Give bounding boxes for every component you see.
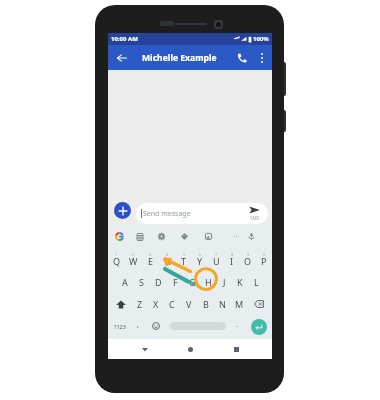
button[interactable]: Back — [112, 48, 132, 68]
staticText: J — [223, 276, 226, 288]
staticText: Send message — [143, 209, 249, 219]
button[interactable]: Send SMS — [249, 206, 260, 221]
button[interactable]: 9 — [240, 249, 256, 271]
button[interactable]: H — [200, 271, 216, 293]
button[interactable]: J — [216, 271, 232, 293]
button[interactable]: G — [184, 271, 200, 293]
staticText: 9 — [247, 252, 250, 257]
button[interactable]: C — [164, 293, 180, 315]
staticText: . — [236, 320, 238, 330]
button[interactable]: , — [132, 319, 144, 333]
button[interactable]: Send message — [136, 203, 268, 224]
staticText: Q — [113, 255, 121, 267]
button[interactable]: Back — [136, 340, 154, 358]
button[interactable]: More tools — [230, 230, 243, 243]
button[interactable]: V — [180, 293, 197, 315]
staticText: H — [205, 276, 212, 288]
button[interactable]: Settings — [155, 230, 168, 243]
staticText: P — [261, 255, 267, 267]
button[interactable]: K — [232, 271, 248, 293]
button[interactable]: 3 — [142, 249, 159, 271]
button[interactable]: 1 — [108, 249, 125, 271]
staticText: 1 — [115, 252, 118, 257]
staticText: T — [181, 255, 187, 267]
staticText: R — [165, 255, 171, 267]
staticText: E — [148, 255, 154, 267]
button[interactable]: Photos — [202, 230, 215, 243]
button[interactable]: F — [167, 271, 184, 293]
button[interactable]: 4 — [159, 249, 176, 271]
staticText: K — [237, 276, 243, 288]
staticText: C — [169, 298, 175, 310]
staticText: V — [186, 298, 192, 310]
staticText: O — [244, 255, 252, 267]
staticText: M — [235, 298, 244, 310]
staticText: U — [213, 255, 220, 267]
staticText: Y — [197, 255, 203, 267]
button[interactable]: B — [197, 293, 214, 315]
button[interactable]: ?123 — [111, 319, 129, 333]
button[interactable]: Google search — [113, 230, 126, 243]
staticText: 2 — [132, 252, 135, 257]
button[interactable]: 7 — [208, 249, 224, 271]
staticText: 4 — [166, 252, 169, 257]
button[interactable]: Home — [181, 340, 199, 358]
button[interactable]: X — [148, 293, 164, 315]
button[interactable]: GIF keyboard — [133, 230, 146, 243]
staticText: 8 — [231, 252, 234, 257]
button[interactable]: 2 — [125, 249, 142, 271]
button[interactable]: Voice input — [245, 230, 258, 243]
button[interactable]: D — [150, 271, 167, 293]
staticText: Michelle Example — [142, 52, 217, 64]
button[interactable]: Z — [132, 293, 148, 315]
staticText: , — [137, 320, 139, 330]
staticText: 10:00 AM — [111, 35, 138, 43]
button[interactable]: 5 — [176, 249, 192, 271]
button[interactable]: M — [231, 293, 248, 315]
staticText: B — [203, 298, 209, 310]
button[interactable]: 0 — [256, 249, 272, 271]
staticText: 100% — [253, 35, 269, 43]
staticText: 0 — [263, 252, 266, 257]
button[interactable]: A — [116, 271, 133, 293]
button[interactable]: Enter — [251, 319, 267, 335]
staticText: F — [173, 276, 178, 288]
button[interactable]: More options — [253, 49, 270, 66]
staticText: W — [129, 255, 138, 267]
staticText: I — [230, 255, 234, 267]
staticText: N — [219, 298, 226, 310]
staticText: 7 — [215, 252, 218, 257]
button[interactable]: Call — [232, 48, 252, 68]
button[interactable]: Stickers — [178, 230, 191, 243]
staticText: 3 — [149, 252, 152, 257]
button[interactable]: S — [133, 271, 150, 293]
button[interactable]: Recents — [227, 340, 245, 358]
staticText: 5 — [183, 252, 186, 257]
button[interactable]: Shift — [108, 293, 132, 315]
staticText: S — [139, 276, 144, 288]
button[interactable]: 6 — [192, 249, 208, 271]
staticText: SMS — [250, 215, 260, 221]
staticText: A — [122, 276, 128, 288]
button[interactable]: L — [248, 271, 264, 293]
button[interactable]: Add attachment — [114, 202, 131, 219]
staticText: Z — [137, 298, 143, 310]
staticText: G — [189, 276, 196, 288]
button[interactable]: . — [231, 319, 243, 333]
staticText: 6 — [199, 252, 202, 257]
button[interactable]: N — [214, 293, 231, 315]
staticText: D — [155, 276, 162, 288]
staticText: ?123 — [114, 323, 126, 330]
button[interactable]: Emoji — [149, 319, 163, 333]
button[interactable]: Backspace — [248, 293, 272, 315]
button[interactable]: 8 — [224, 249, 240, 271]
staticText: X — [153, 298, 159, 310]
staticText: L — [254, 276, 259, 288]
